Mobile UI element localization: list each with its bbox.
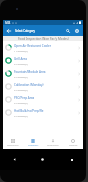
- staticText: Dashboard: [7, 144, 19, 147]
- button[interactable]: PSC/Prep Area: [3, 93, 83, 106]
- staticText: 9 Answer(s): [14, 114, 28, 117]
- staticText: 9 Answer(s): [14, 101, 28, 104]
- staticText: 9 Answer(s): [14, 88, 28, 91]
- staticText: Checklists: [28, 144, 39, 147]
- staticText: Select Category: [15, 29, 36, 33]
- staticText: Downloads: [47, 144, 59, 147]
- button[interactable]: Calibration (Monday): [3, 80, 83, 93]
- staticText: 1 Answer(s): [14, 49, 28, 52]
- staticText: Fountain/Module Area: [14, 70, 46, 74]
- button[interactable]: Open Air Resturant Cooler: [3, 41, 83, 54]
- button[interactable]: Clear filter: [72, 25, 81, 36]
- button[interactable]: Search: [63, 25, 72, 36]
- staticText: 9 Answer(s): [14, 62, 28, 65]
- staticText: Settings: [69, 144, 78, 147]
- button[interactable]: Dashboard: [3, 136, 23, 149]
- button[interactable]: Checklists: [23, 136, 43, 149]
- button[interactable]: Fountain/Module Area: [3, 67, 83, 80]
- staticText: Open Air Resturant Cooler: [14, 44, 51, 48]
- staticText: Hot/Bulk/no/Prep/Re: [14, 109, 44, 113]
- staticText: 9 Answer(s): [14, 75, 28, 78]
- staticText: Calibration (Monday): [14, 83, 44, 87]
- button[interactable]: Grill Area: [3, 54, 83, 67]
- button[interactable]: Settings: [63, 136, 83, 149]
- staticText: PSC/Prep Area: [14, 96, 35, 100]
- staticText: Grill Area: [14, 57, 27, 61]
- button[interactable]: Hot/Bulk/no/Prep/Re: [3, 106, 83, 119]
- staticText: Food Inspection (Non Fac'y Modes): [18, 37, 69, 41]
- button[interactable]: Back: [3, 25, 15, 36]
- staticText: 5:03: [5, 21, 11, 25]
- button[interactable]: Downloads: [43, 136, 63, 149]
